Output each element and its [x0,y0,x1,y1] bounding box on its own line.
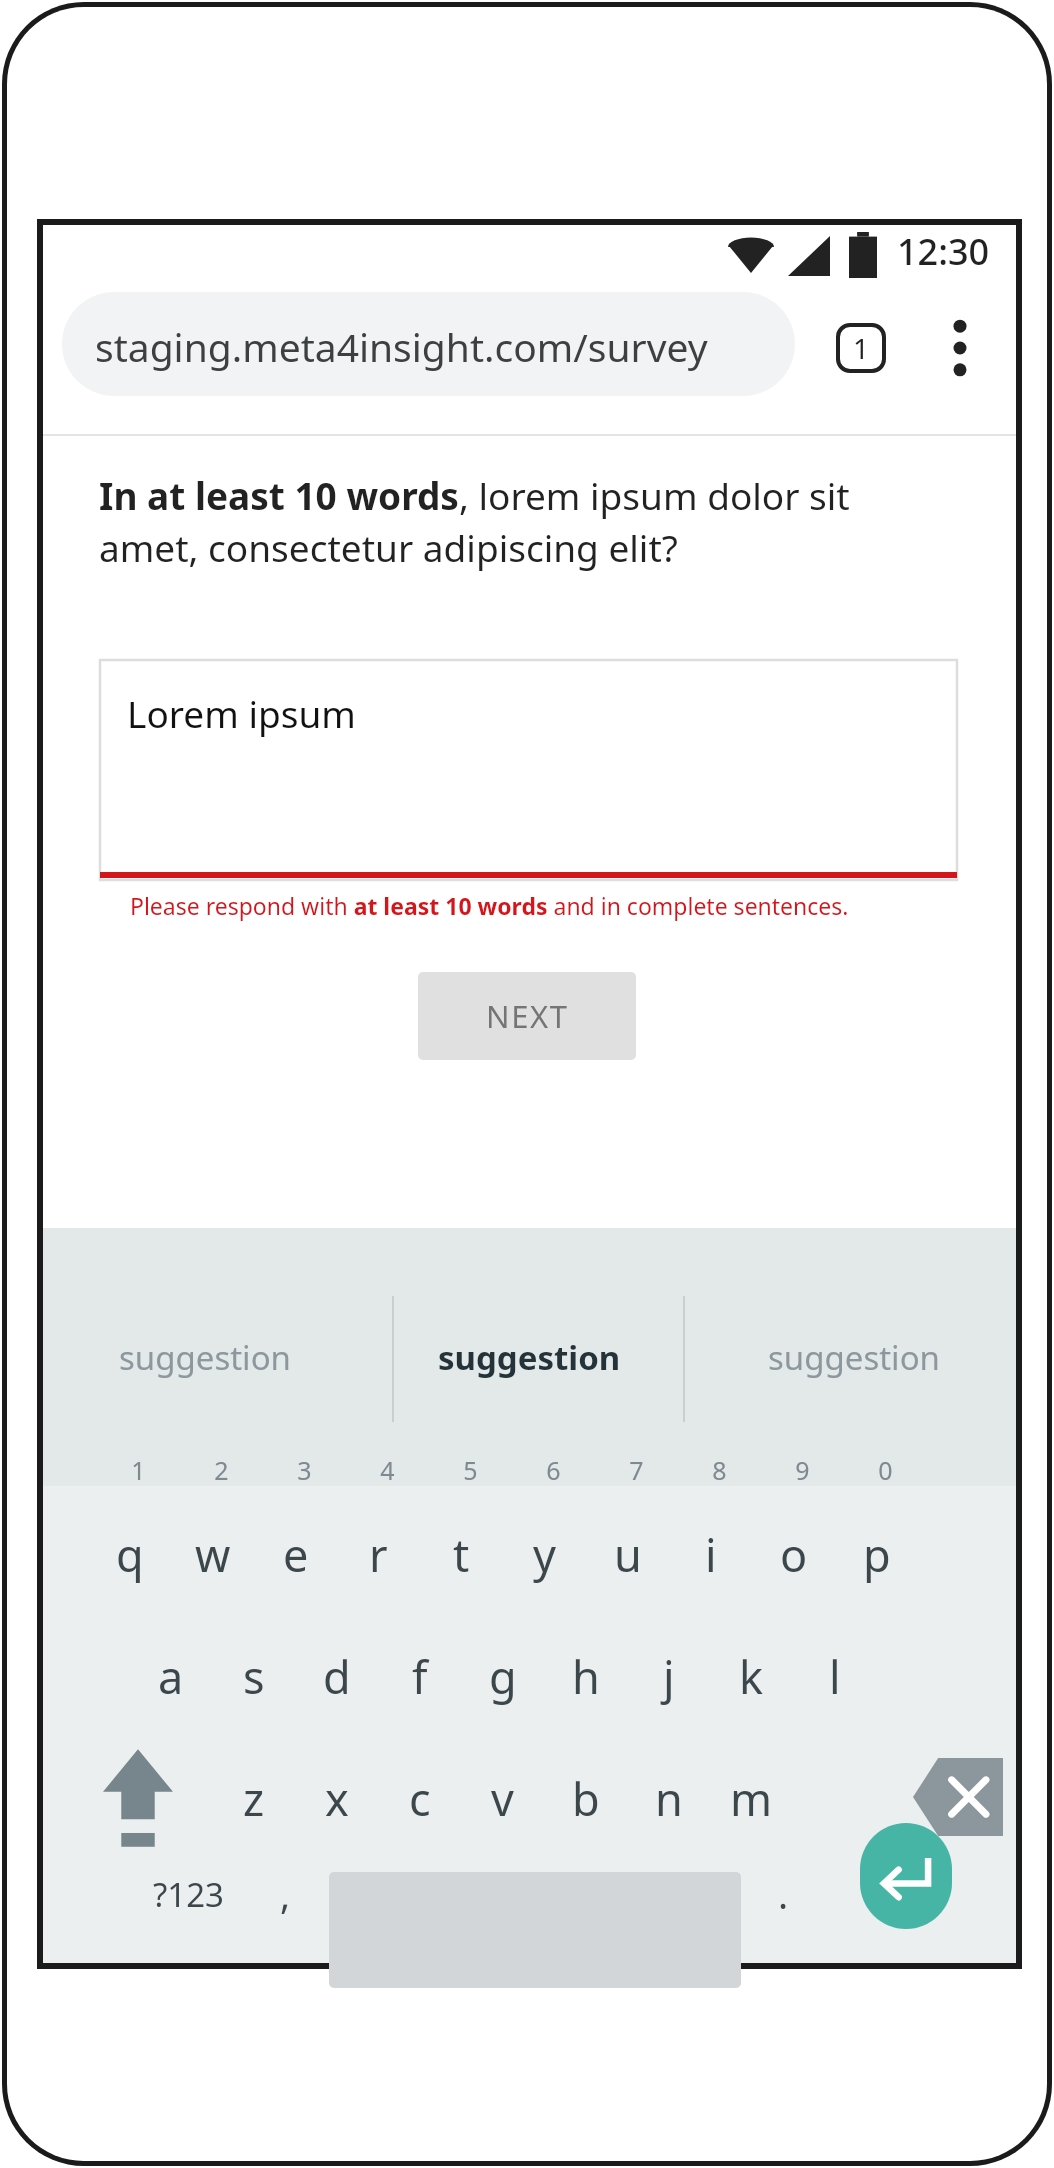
button[interactable]: z [212,1739,295,1857]
button[interactable]: h [544,1617,627,1735]
staticText: Please respond with at least 10 words an… [130,890,849,921]
other: Signal [788,236,830,276]
staticText: m [730,1768,773,1829]
staticText: 9 [795,1453,810,1487]
staticText: w [195,1524,231,1585]
button[interactable]: x [295,1739,378,1857]
staticText: x [325,1768,349,1829]
button[interactable] [100,660,957,880]
button[interactable]: a [129,1617,212,1735]
button[interactable]: i [669,1495,752,1613]
button[interactable]: c [378,1739,461,1857]
button[interactable]: suggestion [692,1228,1016,1486]
button[interactable]: k [710,1617,793,1735]
staticText: v [491,1768,514,1829]
button[interactable] [62,292,795,396]
staticText: q [116,1524,144,1585]
staticText: staging.meta4insight.com/survey [95,320,708,373]
staticText: j [663,1646,675,1707]
staticText: NEXT [486,995,569,1037]
staticText: e [283,1524,309,1585]
button[interactable]: t [420,1495,503,1613]
staticText: c [409,1768,431,1829]
button[interactable]: Shift [100,1745,176,1851]
button[interactable]: r [337,1495,420,1613]
button[interactable]: f [378,1617,461,1735]
staticText: z [243,1768,265,1829]
other: Wi-Fi [728,235,774,275]
button[interactable]: b [544,1739,627,1857]
button[interactable]: NEXT [418,972,636,1060]
button[interactable]: j [627,1617,710,1735]
button[interactable]: n [627,1739,710,1857]
staticText: i [705,1524,717,1585]
button[interactable]: l [793,1617,876,1735]
staticText: o [780,1524,808,1585]
staticText: suggestion [119,1335,291,1380]
button[interactable]: g [461,1617,544,1735]
staticText: d [323,1646,351,1707]
button[interactable]: o [752,1495,835,1613]
staticText: r [369,1524,388,1585]
staticText: Lorem ipsum [127,688,356,738]
button[interactable]: p [835,1495,918,1613]
staticText: 7 [629,1453,644,1487]
button[interactable]: Tabs [838,325,884,371]
button[interactable]: suggestion [367,1228,692,1486]
staticText: 12:30 [897,227,990,276]
staticText: ?123 [153,1872,224,1917]
button[interactable]: e [254,1495,337,1613]
button[interactable]: . [755,1855,811,1933]
staticText: h [572,1646,600,1707]
staticText: f [412,1646,428,1707]
staticText: 0 [878,1453,893,1487]
staticText: 4 [380,1453,395,1487]
button[interactable]: , [255,1855,315,1933]
button[interactable]: More options [936,315,984,381]
staticText: In at least 10 words, lorem ipsum dolor … [99,470,929,573]
button[interactable]: d [295,1617,378,1735]
staticText: l [829,1646,841,1707]
button[interactable]: m [710,1739,793,1857]
button[interactable]: s [212,1617,295,1735]
staticText: 5 [463,1453,478,1487]
staticText: k [739,1646,764,1707]
button[interactable]: suggestion [43,1228,367,1486]
staticText: 6 [546,1453,561,1487]
button[interactable]: y [503,1495,586,1613]
staticText: y [533,1524,556,1585]
staticText: s [243,1646,265,1707]
button[interactable]: Backspace [913,1758,1003,1836]
staticText: p [863,1524,891,1585]
staticText: 2 [214,1453,229,1487]
button[interactable]: v [461,1739,544,1857]
staticText: , [280,1868,291,1920]
staticText: 8 [712,1453,727,1487]
other: Battery [849,232,877,278]
button[interactable]: ?123 [128,1855,248,1933]
button[interactable]: q [88,1495,171,1613]
staticText: a [158,1646,184,1707]
staticText: suggestion [768,1335,940,1380]
staticText: n [655,1768,683,1829]
button[interactable]: w [171,1495,254,1613]
staticText: 3 [297,1453,312,1487]
staticText: suggestion [438,1335,621,1380]
staticText: t [453,1524,470,1585]
staticText: g [489,1646,517,1707]
button[interactable]: Enter [860,1823,952,1929]
staticText: 1 [853,329,870,367]
staticText: u [614,1524,642,1585]
staticText: . [778,1868,789,1920]
staticText: b [572,1768,600,1829]
button[interactable]: u [586,1495,669,1613]
staticText: 1 [131,1453,146,1487]
